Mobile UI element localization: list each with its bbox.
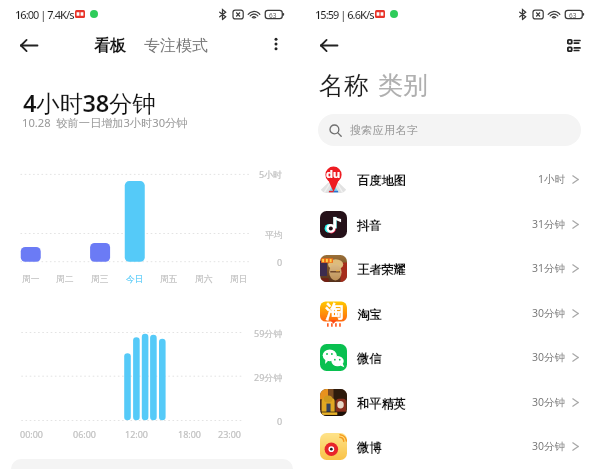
button[interactable]: Sort by category	[558, 30, 588, 60]
staticText: 淘宝	[357, 307, 382, 322]
staticText: 00:00	[20, 428, 44, 440]
button[interactable]: du	[300, 157, 600, 201]
staticText: 周日	[230, 274, 248, 285]
button[interactable]: 专注模式	[142, 36, 210, 56]
button[interactable]: 看板	[92, 36, 128, 56]
staticText: 23:00	[218, 428, 242, 440]
staticText: 4小时38分钟	[23, 87, 156, 119]
staticText: 周五	[160, 274, 178, 285]
staticText: 06:00	[73, 428, 97, 440]
staticText: 微博	[357, 440, 382, 455]
button[interactable]: 微信	[300, 335, 600, 379]
staticText: 10.28 较前一日增加3小时30分钟	[22, 115, 188, 130]
staticText: 63	[569, 11, 577, 20]
staticText: 5小时	[259, 168, 283, 180]
staticText: 30分钟	[532, 395, 566, 409]
staticText: 31分钟	[532, 217, 566, 231]
staticText: 专注模式	[144, 36, 208, 56]
staticText: 今日	[126, 274, 144, 285]
staticText: 30分钟	[532, 306, 566, 320]
button[interactable]: 搜索应用名字	[318, 114, 581, 146]
staticText: 0	[277, 415, 283, 427]
staticText: 王者荣耀	[357, 262, 406, 277]
staticText: 看板	[94, 36, 126, 56]
button[interactable]: 类别	[376, 70, 430, 101]
button[interactable]: More options	[262, 30, 290, 58]
staticText: 15:59 | 6.6K/s	[315, 7, 374, 22]
staticText: 30分钟	[532, 350, 566, 364]
staticText: 1小时	[538, 172, 566, 186]
button[interactable]: 名称	[317, 70, 371, 101]
staticText: 16:00 | 7.4K/s	[15, 7, 74, 22]
staticText: 31分钟	[532, 261, 566, 275]
staticText: 搜索应用名字	[350, 123, 418, 137]
staticText: 周六	[195, 274, 213, 285]
staticText: du	[326, 166, 341, 181]
staticText: 59分钟	[254, 327, 283, 339]
staticText: 百度地图	[357, 173, 406, 188]
staticText: 30分钟	[532, 439, 566, 453]
button[interactable]: 抖音	[300, 202, 600, 246]
staticText: 微信	[357, 351, 382, 366]
staticText: 抖音	[357, 218, 382, 233]
button[interactable]: Back	[14, 30, 44, 60]
staticText: 29分钟	[254, 371, 283, 383]
button[interactable]: 王者荣耀	[300, 246, 600, 290]
button[interactable]: Back	[314, 30, 344, 60]
staticText: 和平精英	[357, 396, 406, 411]
staticText: 18:00	[178, 428, 202, 440]
button[interactable]: 淘	[300, 291, 600, 335]
staticText: 平均	[265, 229, 283, 240]
staticText: 名称	[319, 70, 369, 101]
staticText: 淘	[325, 301, 343, 324]
staticText: 63	[269, 11, 277, 20]
staticText: 周一	[22, 274, 40, 285]
button[interactable]: 微博	[300, 424, 600, 468]
staticText: 周二	[56, 274, 74, 285]
staticText: 12:00	[125, 428, 149, 440]
staticText: 类别	[378, 70, 428, 101]
staticText: 0	[277, 256, 283, 268]
staticText: 周三	[91, 274, 109, 285]
button[interactable]: 和平精英	[300, 380, 600, 424]
